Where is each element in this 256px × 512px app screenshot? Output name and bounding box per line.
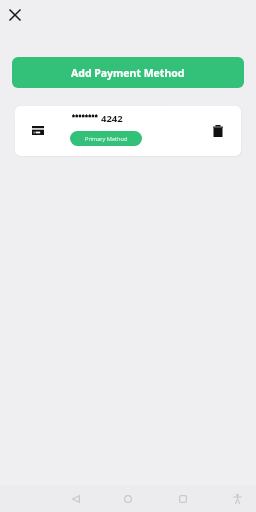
button[interactable]: Accessibility: [221, 485, 253, 512]
button[interactable]: Close: [4, 4, 25, 25]
staticText: Add Payment Method: [71, 66, 185, 80]
staticText: 4242: [101, 112, 123, 124]
button[interactable]: Primary Method: [70, 131, 142, 146]
button[interactable]: Home: [112, 485, 144, 512]
button[interactable]: Recent apps: [167, 485, 199, 512]
staticText: Primary Method: [85, 135, 128, 143]
button[interactable]: Add Payment Method: [12, 57, 244, 88]
button[interactable]: Back: [60, 485, 92, 512]
button[interactable]: Delete: [208, 122, 226, 140]
